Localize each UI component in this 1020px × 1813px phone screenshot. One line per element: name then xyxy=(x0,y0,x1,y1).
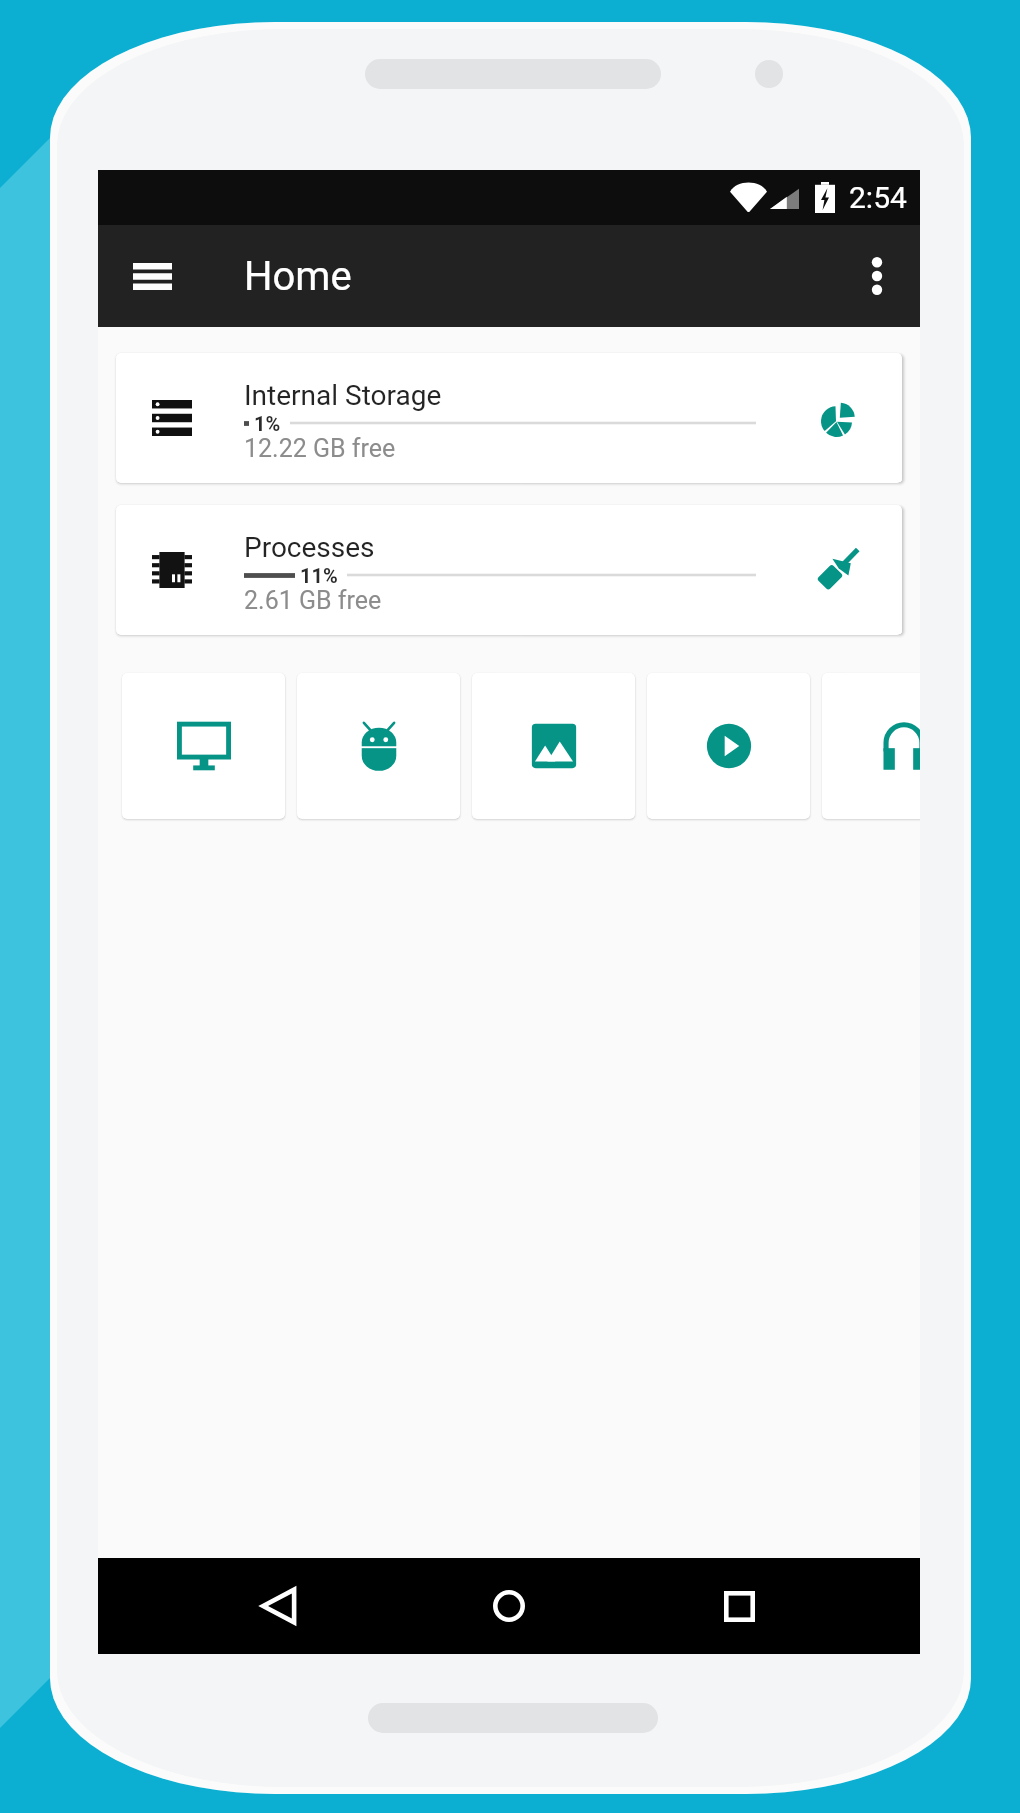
staticText: 12.22 GB free xyxy=(244,434,396,463)
button[interactable]: Recent apps xyxy=(624,1558,854,1654)
button[interactable]: Display xyxy=(122,673,285,819)
staticText: 11% xyxy=(300,564,338,586)
button[interactable]: More options xyxy=(834,225,920,327)
staticText: 1% xyxy=(254,412,281,434)
button[interactable]: Open navigation menu xyxy=(98,225,206,327)
staticText: Home xyxy=(244,253,352,300)
staticText: Processes xyxy=(244,531,375,564)
button[interactable]: Videos xyxy=(647,673,810,819)
button[interactable]: Images xyxy=(472,673,635,819)
button[interactable]: Processes xyxy=(116,505,902,635)
staticText: Internal Storage xyxy=(244,379,442,412)
button[interactable]: System apps xyxy=(297,673,460,819)
button[interactable]: Back xyxy=(164,1558,394,1654)
staticText: 2:54 xyxy=(849,180,907,215)
button[interactable]: Audio xyxy=(822,673,920,819)
button[interactable]: Home xyxy=(394,1558,624,1654)
button[interactable]: Internal Storage xyxy=(116,353,902,483)
staticText: 2.61 GB free xyxy=(244,586,382,615)
